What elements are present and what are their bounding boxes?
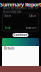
staticText: Amount — [25, 26, 36, 30]
staticText: Item — [4, 14, 10, 18]
staticText: Summary Report — [0, 1, 41, 8]
staticText: Continue — [13, 33, 27, 37]
staticText: Details — [4, 47, 14, 50]
button[interactable]: Continue — [12, 33, 28, 37]
staticText: short description line of secondary text — [3, 6, 38, 14]
staticText: Value — [28, 14, 36, 18]
staticText: Total — [4, 26, 10, 30]
